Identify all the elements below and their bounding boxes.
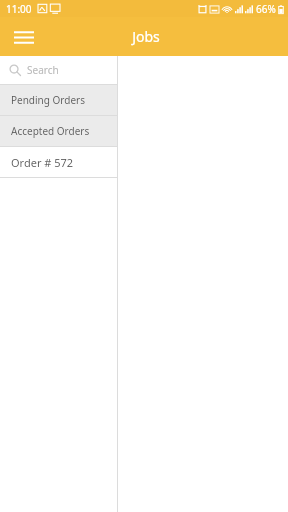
- button[interactable]: Accepted Orders: [0, 116, 117, 146]
- staticText: 11:00: [6, 2, 32, 16]
- staticText: Jobs: [132, 27, 160, 46]
- staticText: Search Restaurant...: [27, 63, 117, 77]
- staticText: Pending Orders: [11, 93, 85, 107]
- staticText: 66%: [256, 2, 276, 16]
- staticText: Accepted Orders: [11, 124, 90, 138]
- button[interactable]: Pending Orders: [0, 85, 117, 115]
- button[interactable]: Search Restaurant...: [0, 56, 117, 84]
- staticText: Order # 572: [11, 155, 74, 170]
- button[interactable]: Order # 572: [0, 147, 117, 177]
- button[interactable]: Open navigation drawer: [6, 19, 42, 55]
